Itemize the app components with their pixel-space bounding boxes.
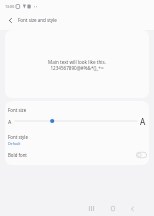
button[interactable]: Back bbox=[127, 203, 138, 214]
staticText: Font style bbox=[8, 134, 28, 140]
staticText: Main text will look like this. bbox=[48, 59, 106, 65]
staticText: A bbox=[8, 118, 12, 125]
staticText: Font size and style bbox=[18, 17, 57, 23]
button[interactable]: Recent apps bbox=[86, 203, 97, 214]
staticText: A bbox=[140, 116, 146, 127]
button[interactable]: Bold font bbox=[136, 152, 147, 158]
button[interactable]: Font style bbox=[5, 131, 149, 148]
staticText: 1234567890@#%&*()_+= bbox=[50, 65, 104, 71]
button[interactable]: Bold font bbox=[5, 146, 149, 163]
staticText: Font size bbox=[8, 107, 27, 113]
staticText: Bold font bbox=[8, 152, 27, 158]
staticText: 13:00 bbox=[5, 4, 15, 9]
button[interactable]: Navigate up bbox=[3, 13, 17, 27]
staticText: Default bbox=[8, 141, 21, 146]
button[interactable]: Home bbox=[107, 203, 118, 214]
